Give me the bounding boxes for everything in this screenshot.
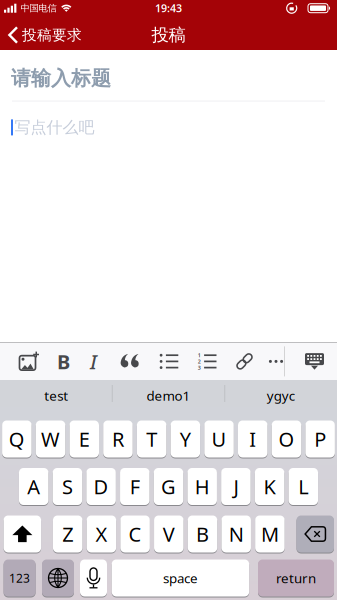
staticText: U <box>211 426 226 452</box>
staticText: 2 <box>198 358 201 365</box>
staticText: X <box>95 521 107 547</box>
staticText: ygyc <box>267 387 295 404</box>
staticText: I <box>249 426 256 452</box>
staticText: T <box>146 426 157 452</box>
staticText: D <box>94 473 109 500</box>
button[interactable]: A <box>19 467 48 505</box>
staticText: A <box>27 473 40 500</box>
staticText: Z <box>62 521 73 547</box>
staticText: return <box>276 569 316 587</box>
button[interactable]: H <box>187 467 217 505</box>
staticText: V <box>163 521 175 547</box>
staticText: P <box>314 426 326 452</box>
button[interactable]: X <box>87 515 116 553</box>
button[interactable]: O <box>272 420 301 458</box>
button[interactable]: W <box>36 420 65 458</box>
staticText: M <box>261 521 279 547</box>
button[interactable]: ygyc <box>225 387 337 404</box>
button[interactable]: T <box>137 420 166 458</box>
button[interactable]: C <box>120 515 150 553</box>
button[interactable]: return <box>258 559 334 597</box>
button[interactable]: N <box>221 515 251 553</box>
staticText: R <box>112 426 124 452</box>
staticText: Y <box>180 426 191 452</box>
button[interactable]: Italic <box>78 343 109 380</box>
staticText: H <box>195 473 210 500</box>
staticText: L <box>298 473 308 500</box>
button[interactable]: Bold <box>49 343 78 380</box>
staticText: C <box>129 521 142 547</box>
button[interactable]: Insert image <box>9 343 49 380</box>
button[interactable]: L <box>288 467 318 505</box>
button[interactable]: Quote <box>109 343 151 380</box>
button[interactable]: Bulleted list <box>151 343 187 380</box>
staticText: J <box>233 473 238 500</box>
staticText: 19:43 <box>155 1 182 15</box>
button[interactable]: Z <box>53 515 82 553</box>
staticText: B <box>57 348 70 375</box>
button[interactable]: 投稿要求 <box>0 26 82 44</box>
staticText: 3 <box>198 364 201 371</box>
button[interactable]: Next keyboard <box>42 559 74 597</box>
staticText: K <box>264 473 276 500</box>
staticText: G <box>161 473 176 500</box>
button[interactable]: Insert link <box>227 343 262 380</box>
staticText: test <box>44 387 68 404</box>
button[interactable]: Shift <box>4 515 41 553</box>
button[interactable]: D <box>86 467 116 505</box>
staticText: 投稿要求 <box>22 26 82 44</box>
staticText: S <box>62 473 73 500</box>
staticText: 写点什么吧 <box>15 118 95 137</box>
button[interactable]: space <box>112 559 249 597</box>
button[interactable]: F <box>120 467 149 505</box>
staticText: B <box>196 521 209 547</box>
button[interactable]: P <box>305 420 335 458</box>
button[interactable]: Dismiss keyboard <box>293 343 336 380</box>
button[interactable]: Numbers <box>4 559 36 597</box>
staticText: 1 <box>198 352 201 359</box>
button[interactable]: Numbered list <box>187 343 227 380</box>
staticText: N <box>229 521 244 547</box>
staticText: 投稿 <box>151 24 185 46</box>
staticText: space <box>163 569 198 587</box>
button[interactable]: More <box>262 343 290 380</box>
button[interactable]: Y <box>171 420 200 458</box>
staticText: Q <box>9 426 25 452</box>
button[interactable]: Dictation <box>80 559 107 597</box>
staticText: demo1 <box>146 387 190 404</box>
staticText: E <box>79 426 90 452</box>
staticText: O <box>278 426 294 452</box>
staticText: W <box>41 426 60 452</box>
button[interactable]: S <box>53 467 82 505</box>
button[interactable]: V <box>154 515 184 553</box>
button[interactable]: test <box>0 387 112 404</box>
button[interactable]: Q <box>2 420 32 458</box>
button[interactable]: E <box>69 420 99 458</box>
button[interactable]: U <box>204 420 234 458</box>
button[interactable]: M <box>255 515 285 553</box>
button[interactable]: demo1 <box>112 387 225 404</box>
button[interactable]: B <box>188 515 217 553</box>
button[interactable]: K <box>255 467 284 505</box>
button[interactable]: J <box>221 467 251 505</box>
staticText: 123 <box>9 570 30 586</box>
button[interactable]: I <box>238 420 267 458</box>
staticText: F <box>130 473 140 500</box>
button[interactable]: R <box>103 420 133 458</box>
button[interactable]: Delete <box>296 515 334 553</box>
button[interactable]: G <box>154 467 183 505</box>
staticText: 请输入标题 <box>11 66 111 91</box>
staticText: 中国电信 <box>20 2 56 14</box>
staticText: I <box>90 348 97 375</box>
